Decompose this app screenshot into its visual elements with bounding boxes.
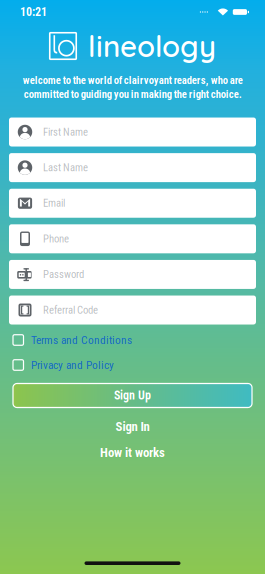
staticText: Sign Up: [114, 388, 151, 403]
staticText: welcome to the world of clairvoyant read…: [22, 74, 242, 100]
button[interactable]: Last Name: [9, 153, 256, 182]
button[interactable]: First Name: [9, 117, 256, 146]
staticText: How it works: [100, 445, 165, 460]
button[interactable]: Password: [9, 260, 256, 289]
button[interactable]: Sign Up: [13, 383, 252, 407]
staticText: 10:21: [20, 5, 47, 19]
staticText: lineology: [88, 28, 216, 64]
button[interactable]: Privacy and Policy: [13, 352, 252, 377]
button[interactable]: How it works: [62, 441, 202, 463]
button[interactable]: Referral Code: [9, 295, 256, 324]
staticText: Last Name: [43, 161, 88, 174]
staticText: Terms and Conditions: [31, 333, 132, 347]
staticText: Referral Code: [43, 304, 98, 316]
button[interactable]: Sign In: [72, 415, 192, 437]
staticText: Privacy and Policy: [31, 358, 114, 372]
staticText: Sign In: [115, 419, 149, 434]
button[interactable]: Phone: [9, 224, 256, 253]
staticText: Phone: [43, 233, 69, 245]
staticText: First Name: [43, 126, 88, 138]
button[interactable]: Email: [9, 189, 256, 218]
staticText: Email: [43, 197, 65, 209]
button[interactable]: Terms and Conditions: [13, 327, 252, 352]
staticText: Password: [43, 268, 84, 281]
